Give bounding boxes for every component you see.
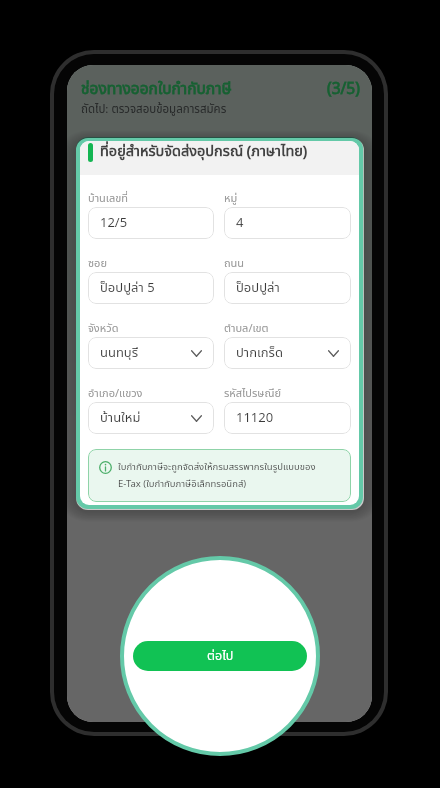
staticText: จังหวัด xyxy=(88,320,119,337)
staticText: ป็อปปูล่า 5 xyxy=(100,278,202,298)
other: Open dropdown xyxy=(191,350,202,357)
button[interactable]: ปากเกร็ด xyxy=(224,337,351,369)
button[interactable]: บ้านใหม่ xyxy=(88,402,214,434)
other: Open dropdown xyxy=(191,415,202,422)
staticText: ที่อยู่สำหรับจัดส่งอุปกรณ์ (ภาษาไทย) xyxy=(100,141,308,163)
staticText: อำเภอ/แขวง xyxy=(88,385,143,402)
staticText: ใบกำกับภาษีจะถูกจัดส่งให้กรมสรรพากรในรูป… xyxy=(118,460,316,491)
staticText: บ้านเลขที่ xyxy=(88,190,128,207)
button[interactable]: 11120 xyxy=(224,402,351,434)
other: Open dropdown xyxy=(328,350,339,357)
staticText: ป็อปปูล่า xyxy=(236,278,339,298)
staticText: 4 xyxy=(236,213,339,233)
staticText: 12/5 xyxy=(100,213,202,233)
staticText: รหัสไปรษณีย์ xyxy=(224,385,281,402)
staticText: ถนน xyxy=(224,255,245,272)
staticText: ถัดไป: ตรวจสอบข้อมูลการสมัคร xyxy=(81,101,227,118)
button[interactable]: นนทบุรี xyxy=(88,337,214,369)
staticText: หมู่ xyxy=(224,190,238,207)
staticText: (3/5) xyxy=(327,78,360,101)
button[interactable]: ต่อไป xyxy=(133,641,307,671)
staticText: ตำบล/เขต xyxy=(224,320,269,337)
button[interactable]: 4 xyxy=(224,207,351,239)
staticText: ช่องทางออกใบกำกับภาษี xyxy=(81,78,232,101)
button[interactable]: ป็อปปูล่า 5 xyxy=(88,272,214,304)
staticText: ซอย xyxy=(88,255,107,272)
staticText: 11120 xyxy=(236,408,339,428)
button[interactable]: 12/5 xyxy=(88,207,214,239)
button[interactable]: ป็อปปูล่า xyxy=(224,272,351,304)
staticText: ปากเกร็ด xyxy=(236,343,328,363)
staticText: นนทบุรี xyxy=(100,343,191,363)
staticText: บ้านใหม่ xyxy=(100,408,191,428)
staticText: ต่อไป xyxy=(207,647,234,666)
